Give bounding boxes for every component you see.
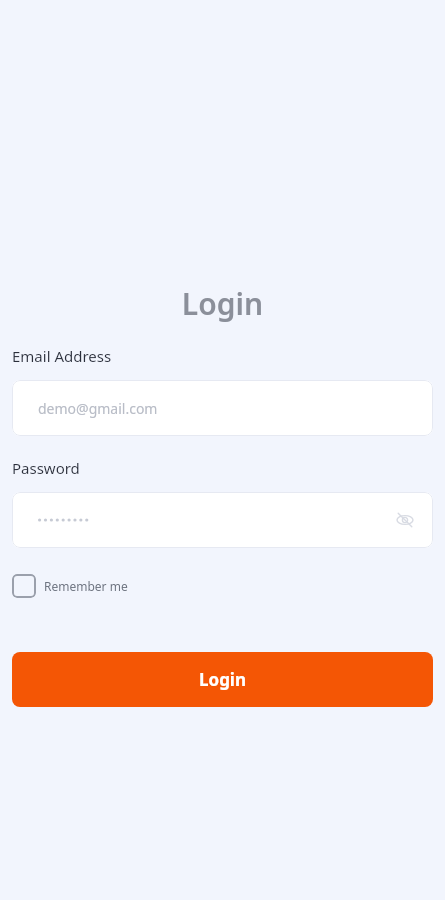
- staticText: Login: [0, 283, 445, 324]
- staticText: Password: [12, 458, 80, 478]
- staticText: demo@gmail.com: [38, 399, 158, 418]
- staticText: Email Address: [12, 346, 112, 366]
- button[interactable]: Login: [12, 652, 433, 707]
- staticText: Login: [199, 668, 247, 691]
- button[interactable]: Show password: [393, 508, 417, 532]
- staticText: Remember me: [44, 578, 128, 594]
- button[interactable]: Show password: [12, 492, 433, 548]
- button[interactable]: demo@gmail.com: [12, 380, 433, 436]
- button[interactable]: Remember me: [12, 574, 128, 598]
